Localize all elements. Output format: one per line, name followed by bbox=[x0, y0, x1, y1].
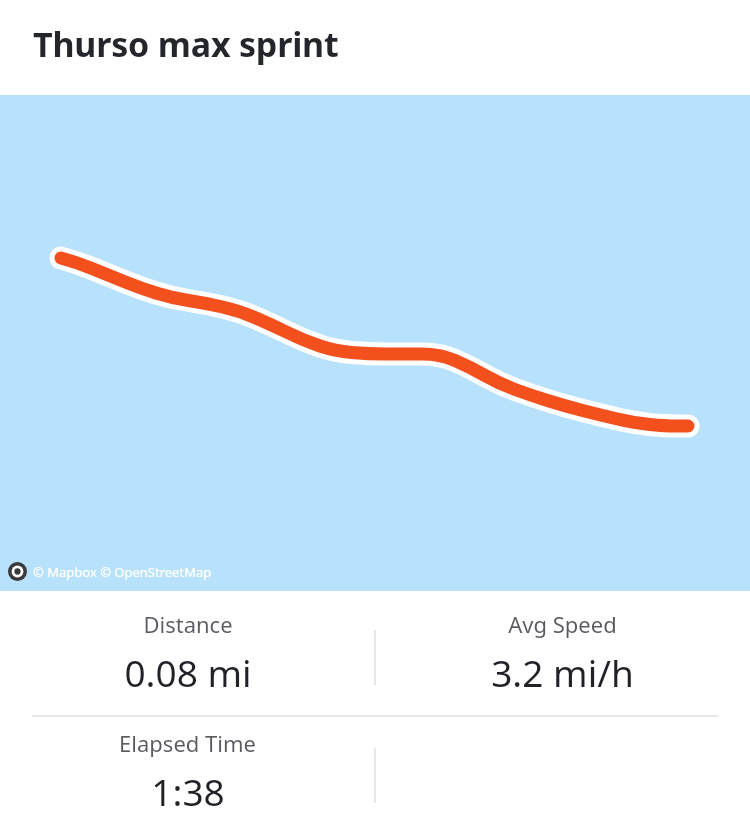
button[interactable]: Mapbox bbox=[6, 560, 214, 583]
staticText: Thurso max sprint bbox=[33, 21, 339, 67]
button[interactable]: Distance bbox=[0, 591, 375, 715]
button[interactable]: Mapbox bbox=[0, 95, 750, 591]
other: Mapbox bbox=[8, 562, 27, 581]
staticText: 1:38 bbox=[151, 766, 225, 816]
button[interactable]: Elapsed Time bbox=[0, 717, 375, 826]
button[interactable]: Avg Speed bbox=[375, 591, 750, 715]
staticText: Elapsed Time bbox=[119, 728, 256, 758]
staticText: Distance bbox=[143, 609, 233, 639]
staticText: 3.2 mi/h bbox=[491, 647, 634, 697]
staticText: 0.08 mi bbox=[124, 647, 252, 697]
staticText: © Mapbox © OpenStreetMap bbox=[33, 563, 212, 581]
staticText: Avg Speed bbox=[508, 609, 617, 639]
button[interactable]: Thurso max sprint bbox=[0, 0, 750, 95]
